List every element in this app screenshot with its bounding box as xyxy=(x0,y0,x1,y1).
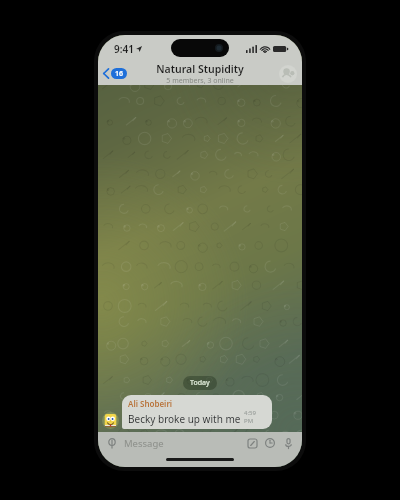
button[interactable]: Today xyxy=(183,376,217,390)
button[interactable]: Ali Shobeiri avatar xyxy=(102,412,119,429)
button[interactable]: Message xyxy=(124,437,244,450)
staticText: Message xyxy=(124,437,164,450)
button[interactable]: Stickers xyxy=(244,435,260,451)
staticText: Becky broke up with me xyxy=(128,412,241,426)
staticText: 9:41 xyxy=(114,42,134,56)
staticText: Natural Stupidity xyxy=(156,62,244,76)
staticText: Today xyxy=(190,378,210,388)
staticText: 4:59 PM xyxy=(244,409,266,425)
button[interactable]: Attach xyxy=(104,435,120,451)
staticText: 16 xyxy=(115,69,124,79)
staticText: 5 members, 3 online xyxy=(166,76,234,85)
button[interactable]: Back, 16 unread xyxy=(98,66,132,81)
button[interactable]: Record voice message xyxy=(280,435,296,451)
button[interactable]: Natural Stupidity xyxy=(156,62,244,85)
button[interactable]: Schedule message xyxy=(262,435,278,451)
staticText: Ali Shobeiri xyxy=(128,398,173,409)
button[interactable]: Ali Shobeiri xyxy=(122,395,272,429)
button[interactable]: Group info xyxy=(279,65,297,83)
